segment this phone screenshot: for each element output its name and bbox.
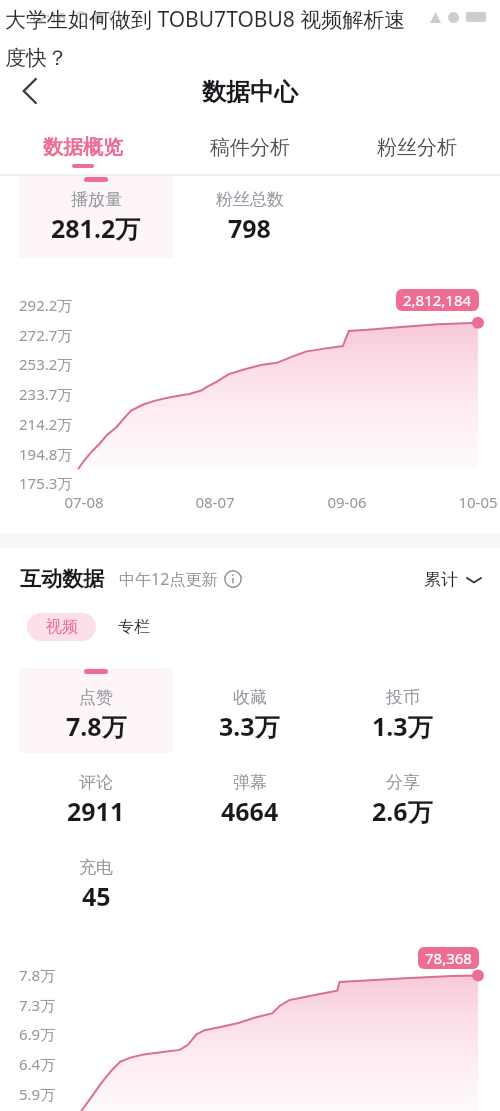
button[interactable]: 分享 (326, 753, 479, 838)
staticText: 45 (82, 879, 111, 913)
staticText: 281.2万 (51, 211, 141, 245)
staticText: 播放量 (71, 189, 122, 210)
button[interactable]: 数据概览 (0, 114, 166, 168)
staticText: 233.7万 (19, 384, 79, 404)
staticText: 4664 (221, 794, 279, 828)
button[interactable]: 专栏 (110, 613, 158, 641)
button[interactable]: 投币 (326, 668, 479, 753)
staticText: 272.7万 (19, 325, 79, 345)
staticText: 7.8万 (19, 965, 79, 985)
staticText: 78,368 (425, 948, 472, 968)
staticText: 175.3万 (19, 473, 79, 493)
staticText: 07-08 (60, 492, 108, 512)
staticText: 798 (228, 211, 271, 245)
staticText: 充电 (79, 857, 113, 878)
button[interactable]: 累计 (424, 569, 481, 590)
button[interactable]: Back (12, 73, 48, 109)
staticText: 1.3万 (372, 709, 433, 743)
staticText: 分享 (386, 772, 420, 793)
staticText: 214.2万 (19, 414, 79, 434)
staticText: 253.2万 (19, 354, 79, 374)
staticText: 12:16 (30, 8, 66, 27)
button[interactable]: 充电 (19, 838, 173, 923)
staticText: 累计 (424, 569, 458, 590)
other: Info (224, 570, 242, 588)
staticText: 6.9万 (19, 1024, 79, 1044)
staticText: 194.8万 (19, 444, 79, 464)
staticText: 收藏 (233, 687, 267, 708)
staticText: 视频 (46, 617, 78, 637)
staticText: 点赞 (79, 687, 113, 708)
button[interactable]: 评论 (19, 753, 173, 838)
staticText: 互动数据 (20, 566, 104, 592)
staticText: 粉丝分析 (377, 135, 457, 160)
button[interactable]: 弹幕 (173, 753, 326, 838)
staticText: 2,812,184 (403, 290, 472, 310)
staticText: 数据中心 (202, 77, 298, 107)
staticText: 评论 (79, 772, 113, 793)
staticText: 09-06 (323, 492, 371, 512)
staticText: 数据概览 (43, 135, 123, 160)
button[interactable]: 稿件分析 (166, 114, 333, 164)
staticText: 292.2万 (19, 295, 79, 315)
staticText: 08-07 (191, 492, 239, 512)
staticText: 大学生如何做到 TOBU7TOBU8 视频解析速 (5, 5, 406, 34)
button[interactable]: 粉丝分析 (333, 114, 500, 164)
button[interactable]: 粉丝总数 (173, 176, 326, 258)
button[interactable]: 收藏 (173, 668, 326, 753)
staticText: 2.6万 (372, 794, 433, 828)
staticText: 专栏 (118, 617, 150, 637)
staticText: 弹幕 (233, 772, 267, 793)
staticText: 7.3万 (19, 995, 79, 1015)
button[interactable]: 视频 (27, 613, 96, 641)
staticText: 粉丝总数 (216, 189, 284, 210)
button[interactable]: 播放量 (19, 176, 173, 258)
staticText: 投币 (386, 687, 420, 708)
staticText: 2911 (67, 794, 125, 828)
staticText: 3.3万 (219, 709, 280, 743)
staticText: 6.4万 (19, 1054, 79, 1074)
staticText: 7.8万 (66, 709, 127, 743)
staticText: 度快？ (5, 45, 68, 71)
staticText: 5.9万 (19, 1084, 79, 1104)
staticText: 10-05 (454, 492, 500, 512)
button[interactable]: 点赞 (19, 668, 173, 753)
staticText: 中午12点更新 (119, 568, 218, 590)
staticText: 稿件分析 (210, 135, 290, 160)
